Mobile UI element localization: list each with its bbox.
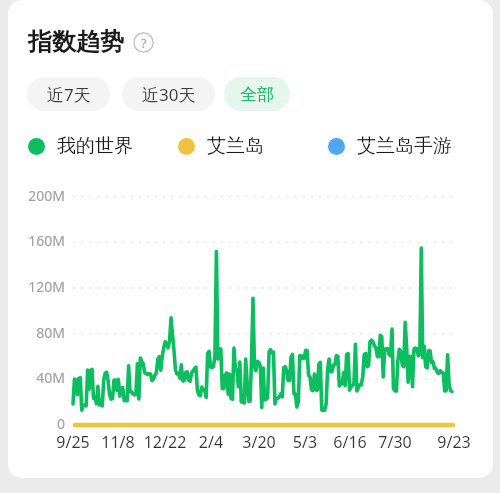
staticText: 2/4 <box>181 431 241 453</box>
staticText: 0 <box>10 414 65 433</box>
staticText: 艾兰岛 <box>207 134 264 158</box>
staticText: 9/23 <box>424 431 484 453</box>
button[interactable]: 近7天 <box>27 77 110 111</box>
staticText: 指数趋势 <box>28 27 124 57</box>
staticText: 120M <box>10 277 65 296</box>
staticText: 全部 <box>240 84 274 105</box>
button[interactable]: Help <box>133 32 154 53</box>
staticText: 11/8 <box>88 431 148 453</box>
staticText: 近7天 <box>47 83 91 106</box>
button[interactable]: 近30天 <box>122 77 215 111</box>
staticText: 近30天 <box>142 83 196 106</box>
staticText: 40M <box>10 368 65 387</box>
button[interactable]: 全部 <box>224 77 290 111</box>
staticText: 80M <box>10 323 65 342</box>
staticText: 160M <box>10 231 65 250</box>
staticText: 我的世界 <box>57 134 133 158</box>
staticText: 5/3 <box>275 431 335 453</box>
staticText: 12/22 <box>135 431 195 453</box>
staticText: 200M <box>10 186 65 205</box>
staticText: 7/30 <box>365 431 425 453</box>
staticText: 6/16 <box>320 431 380 453</box>
staticText: ? <box>141 34 147 52</box>
staticText: 艾兰岛手游 <box>357 134 452 158</box>
staticText: 3/20 <box>229 431 289 453</box>
staticText: 9/25 <box>43 431 103 453</box>
